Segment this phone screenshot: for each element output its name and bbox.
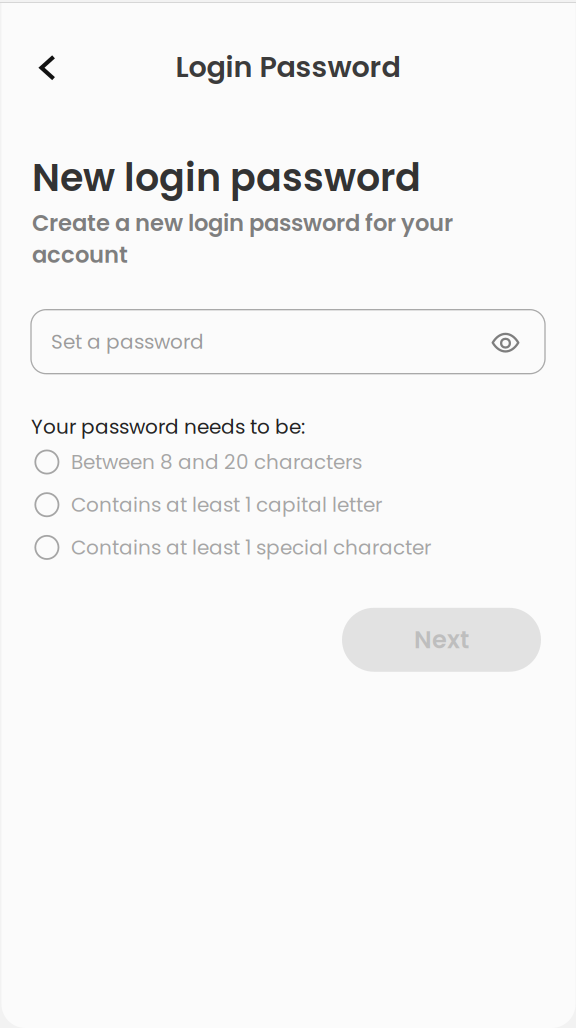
staticText: Contains at least 1 capital letter (71, 491, 382, 519)
button[interactable]: Show password (487, 322, 525, 361)
button[interactable]: Next (342, 608, 541, 672)
staticText: Set a password (51, 328, 204, 356)
button[interactable]: Back (24, 43, 70, 91)
staticText: Your password needs to be: (31, 413, 305, 441)
staticText: Between 8 and 20 characters (71, 448, 362, 476)
staticText: Create a new login password for your acc… (32, 207, 453, 271)
staticText: Login Password (175, 47, 400, 87)
staticText: Contains at least 1 special character (71, 533, 431, 561)
staticText: New login password (32, 151, 421, 204)
staticText: Next (414, 623, 469, 657)
